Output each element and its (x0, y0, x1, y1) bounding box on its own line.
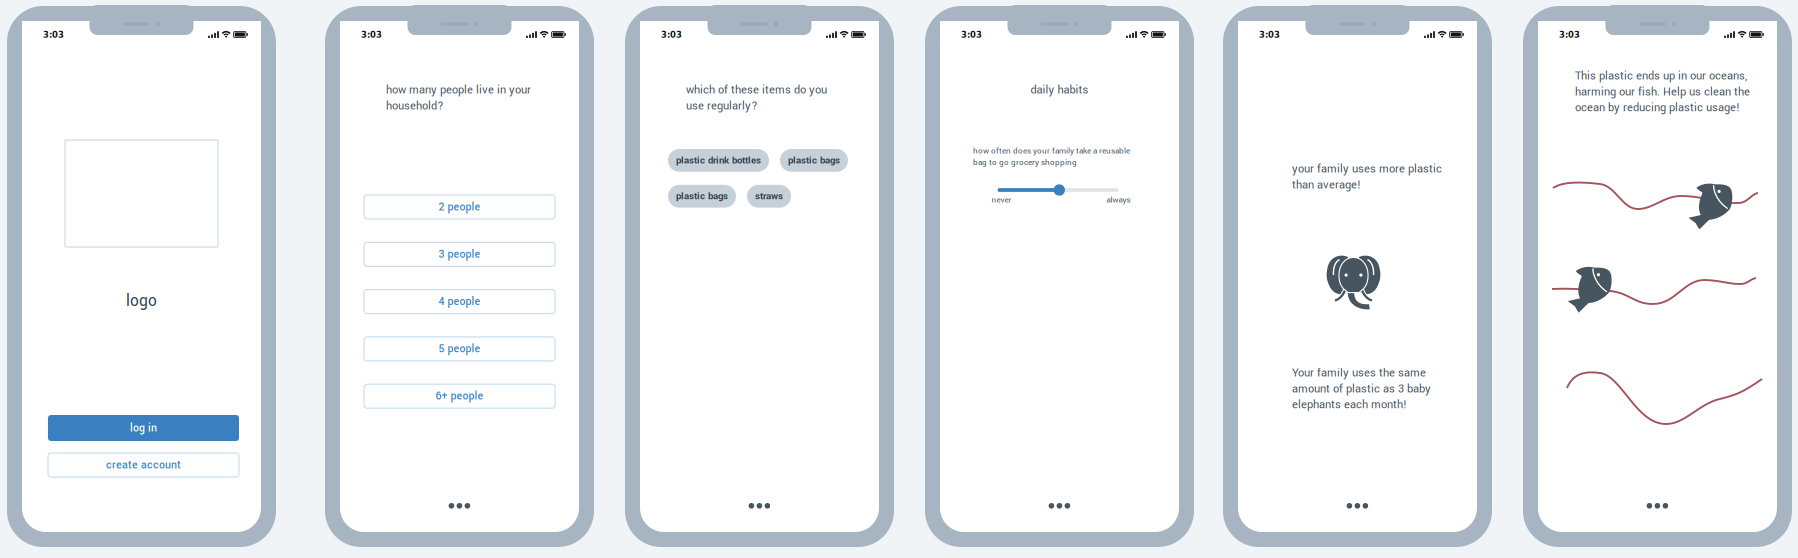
button[interactable]: 6+ people (364, 384, 555, 408)
staticText: straws (755, 189, 783, 203)
button[interactable]: 3 people (364, 242, 555, 266)
staticText: 3:03 (1559, 30, 1580, 40)
staticText: 3:03 (961, 30, 982, 40)
staticText: how many people live in your household? (386, 82, 531, 114)
staticText: your family uses more plastic than avera… (1292, 161, 1442, 193)
staticText: create account (106, 457, 181, 473)
staticText: plastic bags (788, 153, 840, 167)
staticText: always (1107, 194, 1131, 206)
staticText: daily habits (1030, 82, 1088, 98)
staticText: how often does your family take a reusab… (973, 145, 1130, 168)
staticText: Your family uses the same amount of plas… (1292, 365, 1431, 413)
staticText: 5 people (438, 341, 480, 356)
button[interactable]: straws (747, 185, 791, 208)
button[interactable]: 2 people (364, 195, 555, 219)
staticText: 3:03 (361, 30, 382, 40)
staticText: 2 people (438, 199, 480, 215)
button[interactable]: create account (48, 453, 239, 477)
staticText: which of these items do you use regularl… (686, 82, 827, 114)
button[interactable]: 4 people (364, 290, 555, 314)
button[interactable]: plastic bags (668, 185, 736, 208)
staticText: plastic drink bottles (676, 153, 761, 167)
button[interactable]: plastic bags (780, 149, 848, 172)
staticText: 3:03 (1259, 30, 1280, 40)
button[interactable]: 5 people (364, 337, 555, 361)
staticText: plastic bags (676, 189, 728, 203)
staticText: This plastic ends up in our oceans, harm… (1575, 68, 1750, 116)
staticText: 3:03 (661, 30, 682, 40)
staticText: log in (130, 420, 157, 436)
staticText: 6+ people (435, 389, 483, 404)
button[interactable]: log in (48, 415, 239, 441)
button[interactable]: plastic drink bottles (668, 149, 769, 172)
staticText: logo (126, 290, 157, 312)
staticText: 3 people (438, 247, 480, 262)
staticText: never (991, 194, 1011, 206)
staticText: 3:03 (43, 30, 64, 40)
staticText: 4 people (438, 294, 480, 309)
